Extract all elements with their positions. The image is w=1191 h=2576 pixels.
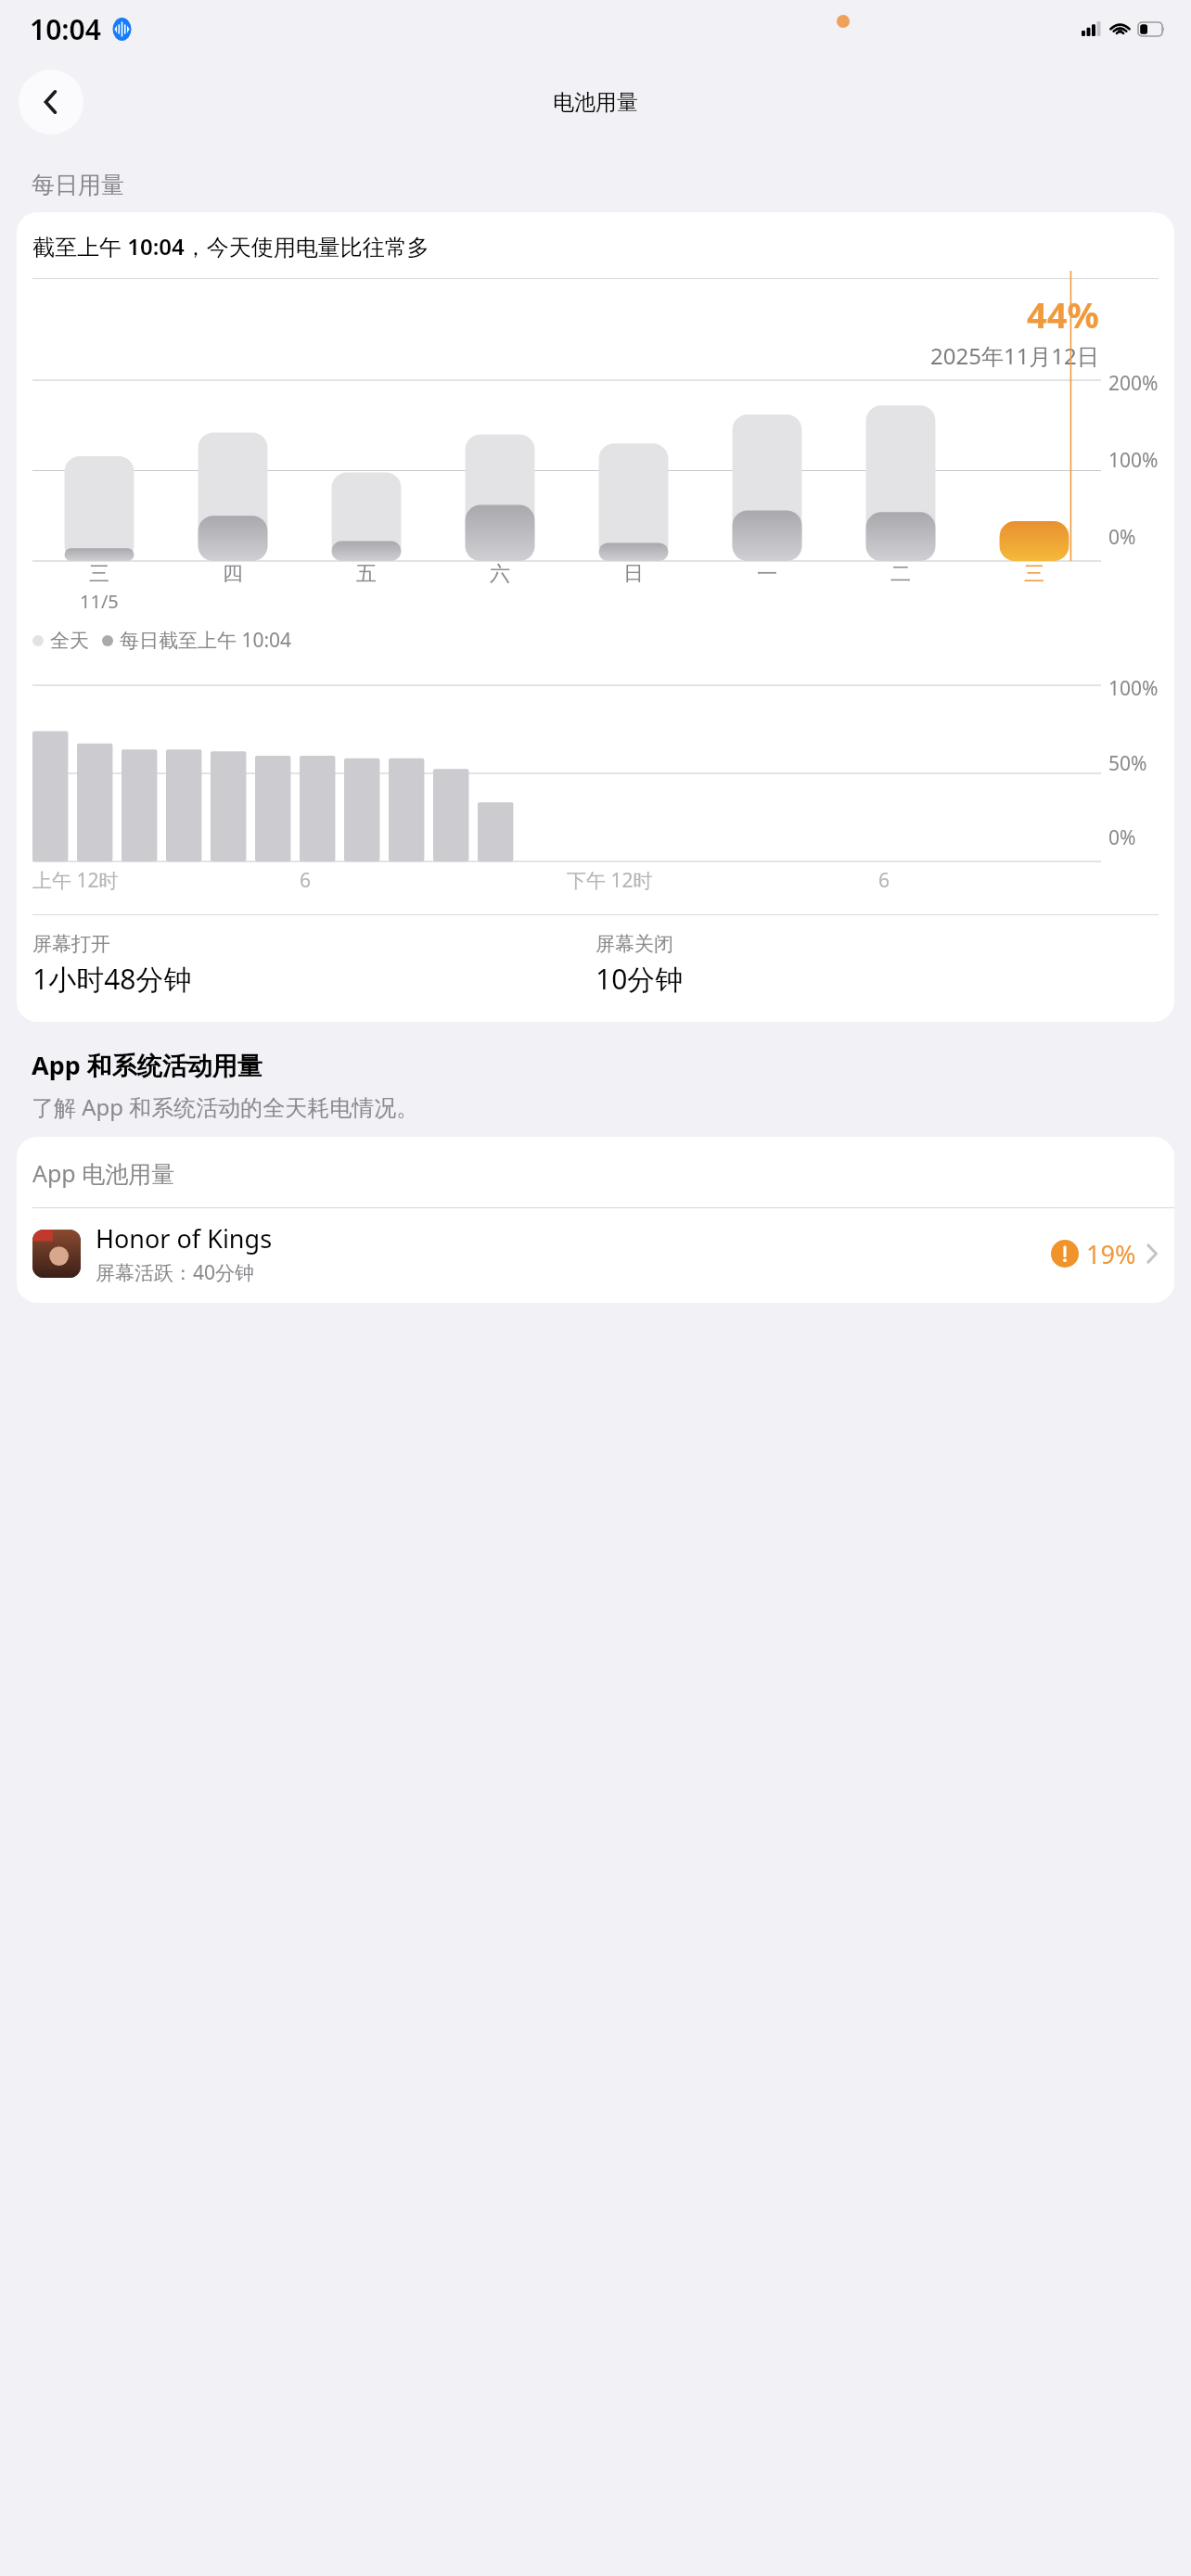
staticText: 50% bbox=[1108, 750, 1147, 777]
staticText: 0% bbox=[1108, 524, 1136, 551]
staticText: App 电池用量 bbox=[32, 1157, 175, 1189]
staticText: 1小时48分钟 bbox=[32, 960, 192, 998]
staticText: 100% bbox=[1108, 447, 1159, 474]
staticText: 上午 12时 bbox=[32, 867, 119, 894]
staticText: 每日截至上午 10:04 bbox=[120, 627, 292, 654]
staticText: Honor of Kings bbox=[96, 1221, 273, 1256]
staticText: 200% bbox=[1108, 370, 1159, 397]
staticText: App 和系统活动用量 bbox=[32, 1048, 263, 1082]
staticText: 电池用量 bbox=[553, 89, 638, 116]
staticText: 10:04 bbox=[30, 10, 101, 48]
staticText: 屏幕打开 bbox=[32, 932, 110, 956]
staticText: 每日用量 bbox=[32, 171, 124, 199]
staticText: 六 bbox=[490, 561, 510, 587]
button[interactable]: Back bbox=[19, 70, 83, 134]
staticText: 一 bbox=[757, 561, 777, 587]
staticText: 下午 12时 bbox=[567, 867, 653, 894]
staticText: 三 bbox=[89, 561, 109, 587]
staticText: 0% bbox=[1108, 824, 1136, 851]
staticText: 截至上午 10:04，今天使用电量比往常多 bbox=[32, 231, 429, 261]
staticText: 五 bbox=[356, 561, 377, 587]
staticText: 44% bbox=[1027, 290, 1099, 338]
staticText: 全天 bbox=[50, 629, 89, 653]
staticText: 2025年11月12日 bbox=[930, 340, 1099, 371]
staticText: 四 bbox=[223, 561, 243, 587]
staticText: 日 bbox=[623, 561, 644, 587]
staticText: 了解 App 和系统活动的全天耗电情况。 bbox=[32, 1091, 419, 1122]
staticText: 屏幕关闭 bbox=[595, 932, 673, 956]
staticText: 三 bbox=[1024, 561, 1044, 587]
staticText: 19% bbox=[1086, 1237, 1136, 1271]
button[interactable]: 截至上午 10:04，今天使用电量比往常多 bbox=[17, 212, 1174, 1022]
staticText: 6 bbox=[300, 867, 312, 894]
staticText: 二 bbox=[890, 561, 911, 587]
staticText: 6 bbox=[878, 867, 890, 894]
staticText: 11/5 bbox=[80, 589, 119, 614]
staticText: 屏幕活跃：40分钟 bbox=[96, 1259, 255, 1286]
staticText: 10分钟 bbox=[595, 960, 684, 998]
button[interactable]: App 电池用量 bbox=[17, 1137, 1174, 1303]
staticText: 100% bbox=[1108, 675, 1159, 702]
